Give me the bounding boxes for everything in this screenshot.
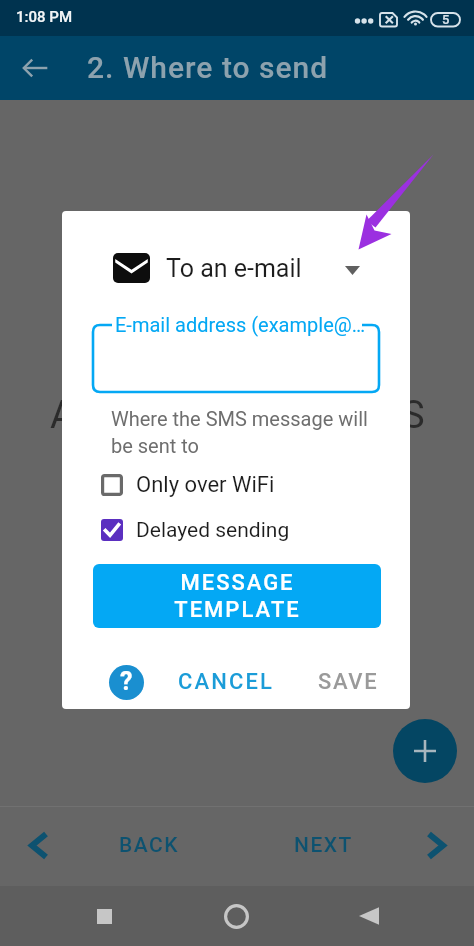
staticText: 1:08 PM xyxy=(16,8,73,26)
staticText: E-mail address (example@… xyxy=(115,313,366,336)
staticText: MESSAGE TEMPLATE xyxy=(174,570,301,622)
staticText: BACK xyxy=(119,833,179,858)
button[interactable]: Delayed sending xyxy=(91,508,267,552)
button[interactable]: CANCEL xyxy=(168,661,284,703)
button[interactable]: Navigate up xyxy=(7,40,63,96)
button[interactable]: Help xyxy=(103,659,149,705)
staticText: CANCEL xyxy=(178,669,274,695)
button[interactable]: To an e-mail xyxy=(62,235,410,301)
button[interactable]: SAVE xyxy=(308,661,389,703)
staticText: Add recipients of SMS xyxy=(50,393,425,438)
staticText: Only over WiFi xyxy=(136,472,275,498)
button[interactable]: NEXT xyxy=(208,813,458,877)
button[interactable]: Add xyxy=(393,719,457,783)
staticText: NEXT xyxy=(294,833,353,858)
button[interactable]: Back xyxy=(341,888,397,944)
button[interactable]: Home xyxy=(208,888,264,944)
staticText: SAVE xyxy=(318,669,379,695)
staticText: Where the SMS message will be sent to xyxy=(111,407,368,458)
button[interactable]: Recents xyxy=(76,888,132,944)
staticText: To an e-mail xyxy=(166,254,302,283)
staticText: 2. Where to send xyxy=(87,50,329,85)
staticText: Delayed sending xyxy=(136,518,290,543)
button[interactable]: MESSAGE TEMPLATE xyxy=(93,564,381,628)
staticText: 5 xyxy=(442,12,450,27)
button[interactable]: Only over WiFi xyxy=(91,463,252,507)
button[interactable]: BACK xyxy=(16,813,262,877)
staticText: ? xyxy=(120,667,133,696)
